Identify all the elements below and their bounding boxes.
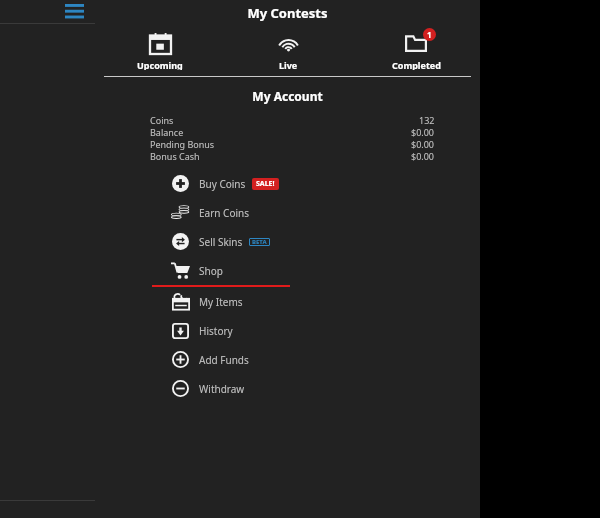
button[interactable]: My Items: [95, 287, 480, 316]
staticText: $0.00: [411, 150, 435, 162]
staticText: Pending Bonus: [150, 138, 215, 150]
staticText: My Account: [95, 88, 480, 104]
staticText: Withdraw: [199, 382, 245, 396]
button[interactable]: Shop: [95, 256, 480, 285]
button[interactable]: Menu: [60, 0, 88, 23]
staticText: My Contests: [95, 4, 480, 22]
staticText: Buy Coins: [199, 177, 246, 191]
button[interactable]: 1: [352, 30, 480, 70]
staticText: Coins: [150, 114, 174, 126]
staticText: $0.00: [411, 126, 435, 138]
staticText: Balance: [150, 126, 184, 138]
staticText: Live: [279, 59, 298, 70]
staticText: $0.00: [411, 138, 435, 150]
staticText: SALE!: [256, 179, 275, 189]
staticText: BETA: [252, 238, 267, 246]
button[interactable]: Sell Skins: [95, 227, 480, 256]
staticText: Earn Coins: [199, 206, 249, 220]
staticText: History: [199, 324, 233, 338]
staticText: Sell Skins: [199, 235, 243, 249]
button[interactable]: Add Funds: [95, 345, 480, 374]
staticText: Shop: [199, 264, 223, 278]
staticText: Bonus Cash: [150, 150, 200, 162]
button[interactable]: History: [95, 316, 480, 345]
button[interactable]: Live: [224, 30, 352, 70]
button[interactable]: Buy Coins: [95, 169, 480, 198]
staticText: My Items: [199, 295, 243, 309]
button[interactable]: Withdraw: [95, 374, 480, 403]
staticText: Completed: [392, 59, 441, 70]
button[interactable]: Upcoming: [95, 30, 224, 70]
staticText: Add Funds: [199, 353, 249, 367]
button[interactable]: Earn Coins: [95, 198, 480, 227]
staticText: Upcoming: [137, 59, 183, 70]
staticText: 132: [419, 114, 435, 126]
staticText: 1: [427, 29, 432, 40]
